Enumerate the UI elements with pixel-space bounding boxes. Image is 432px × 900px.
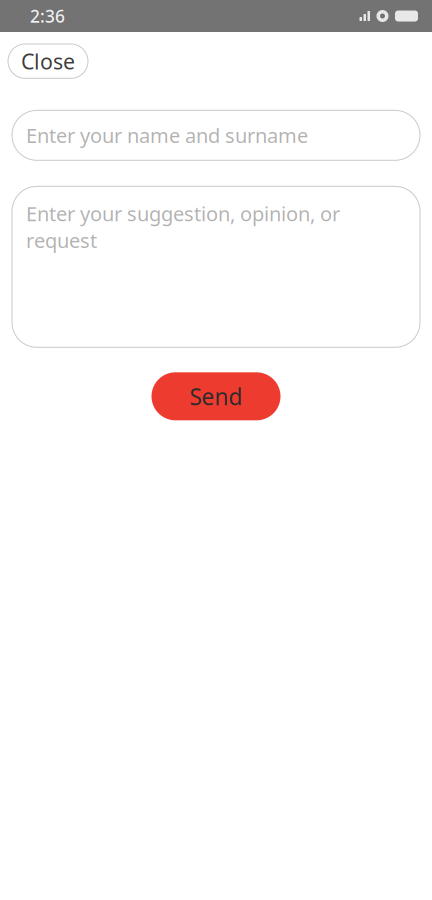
staticText: Close (21, 47, 75, 75)
staticText: 2:36 (30, 4, 65, 27)
button[interactable]: Enter your suggestion, opinion, or reque… (12, 186, 420, 347)
staticText: Send (189, 381, 242, 411)
staticText: Enter your name and surname (26, 122, 308, 149)
button[interactable]: Send (151, 372, 280, 420)
button[interactable]: Close (8, 44, 88, 78)
staticText: Enter your suggestion, opinion, or reque… (26, 200, 340, 253)
button[interactable]: Enter your name and surname (12, 110, 420, 160)
